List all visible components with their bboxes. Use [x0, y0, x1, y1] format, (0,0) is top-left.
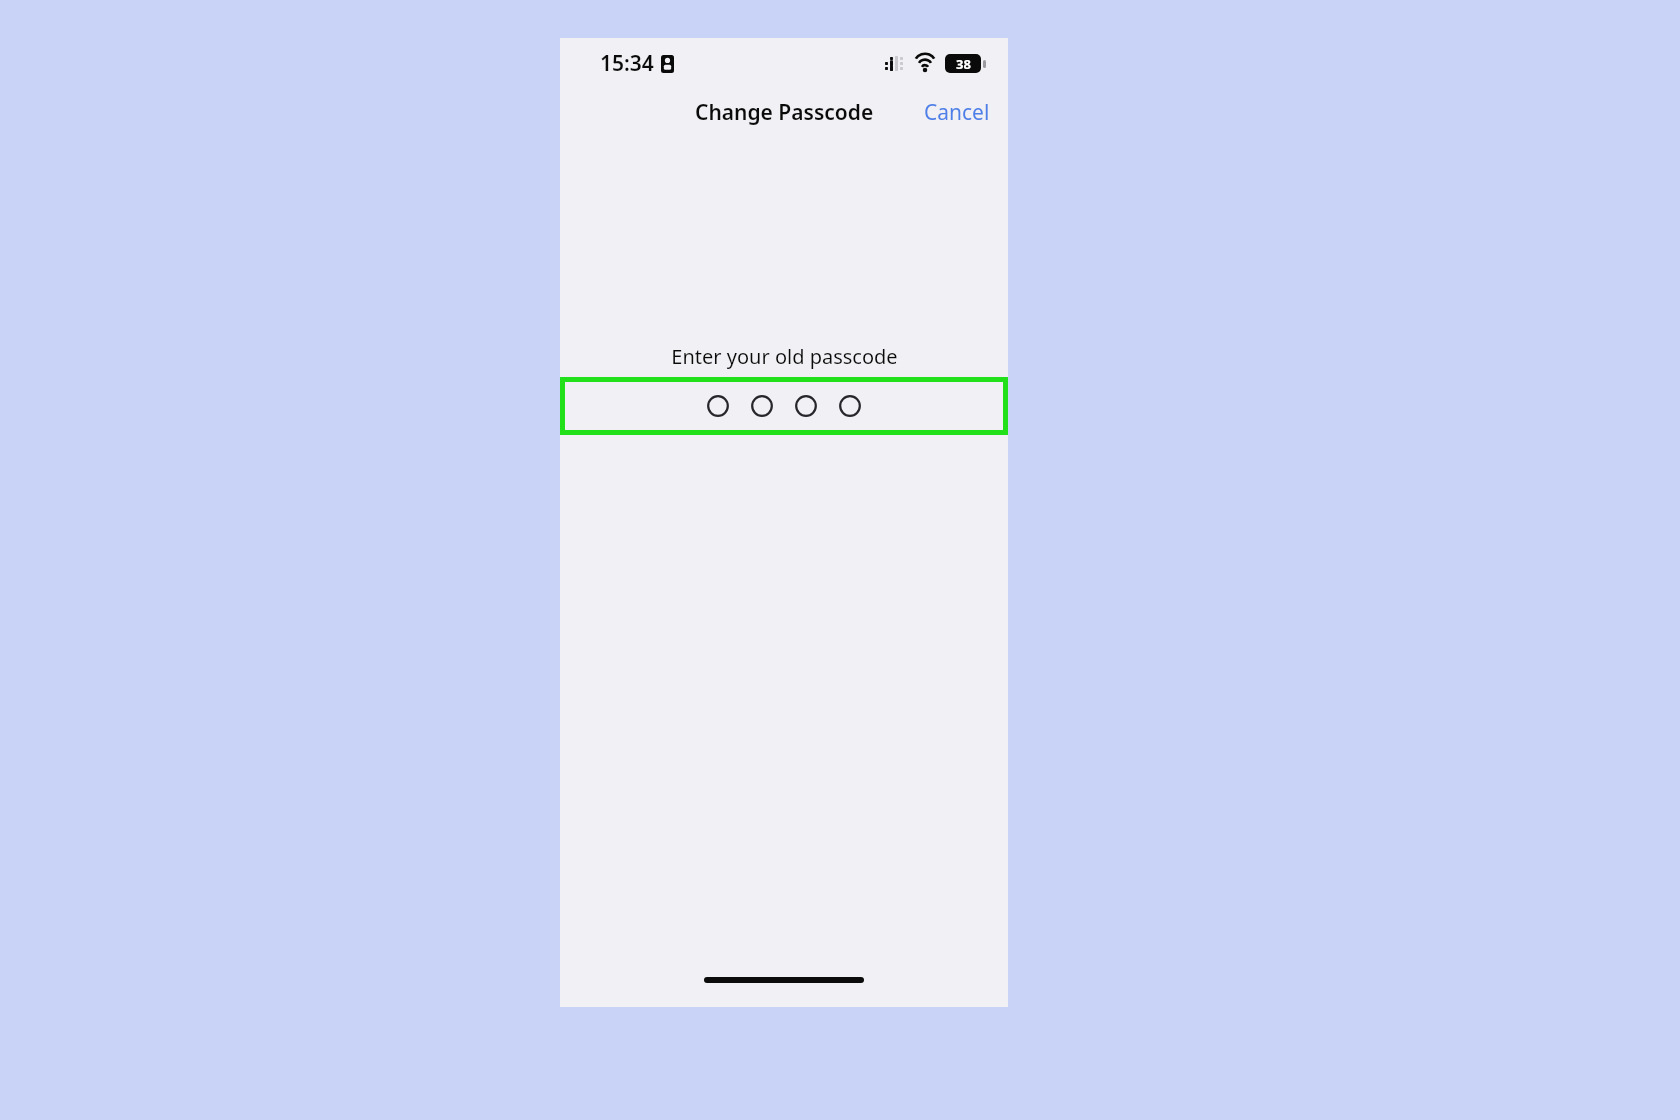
staticText: Cancel	[924, 98, 990, 127]
staticText: Change Passcode	[695, 98, 874, 127]
staticText: 38	[956, 55, 971, 73]
button[interactable]: Cancel	[906, 92, 1008, 133]
staticText: 15:34	[600, 49, 654, 78]
button[interactable]: Passcode entry field	[565, 382, 1003, 430]
staticText: Enter your old passcode	[671, 343, 898, 370]
